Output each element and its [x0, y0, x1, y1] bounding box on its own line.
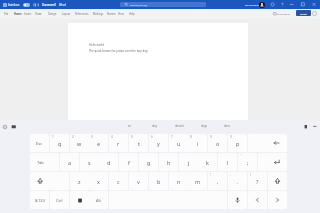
- staticText: o: [216, 140, 220, 147]
- button[interactable]: ;: [238, 153, 257, 171]
- button[interactable]: Share: [296, 10, 311, 16]
- button[interactable]: win: [70, 191, 89, 209]
- staticText: y: [157, 140, 160, 147]
- staticText: Document1: [42, 3, 57, 7]
- button[interactable]: shift: [30, 172, 69, 190]
- button[interactable]: y: [149, 134, 168, 152]
- button[interactable]: References: [74, 9, 88, 19]
- button[interactable]: Comments: [273, 10, 293, 17]
- button[interactable]: left: [248, 191, 267, 209]
- button[interactable]: Search: [120, 2, 206, 7]
- button[interactable]: ,: [208, 172, 227, 190]
- staticText: Tab: [37, 160, 44, 165]
- button[interactable]: r: [109, 134, 128, 152]
- button[interactable]: .: [228, 172, 247, 190]
- button[interactable]: Help: [128, 9, 134, 19]
- button[interactable]: k: [198, 153, 217, 171]
- button[interactable]: Alt: [89, 191, 108, 209]
- button[interactable]: v: [129, 172, 148, 190]
- button[interactable]: p: [228, 134, 247, 152]
- button[interactable]: dogs: [193, 122, 215, 130]
- staticText: Insert: [24, 12, 32, 16]
- staticText: e: [97, 140, 101, 147]
- button[interactable]: c: [109, 172, 128, 190]
- button[interactable]: b: [149, 172, 168, 190]
- button[interactable]: Home: [13, 9, 21, 19]
- staticText: Help: [129, 12, 135, 16]
- staticText: u: [177, 140, 181, 147]
- button[interactable]: More options: [312, 11, 317, 16]
- button[interactable]: q: [50, 134, 69, 152]
- button[interactable]: z: [70, 172, 89, 190]
- button[interactable]: Insert: [23, 9, 31, 19]
- staticText: r: [117, 140, 120, 147]
- button[interactable]: Word: [3, 3, 7, 7]
- button[interactable]: j: [179, 153, 198, 171]
- button[interactable]: g: [139, 153, 158, 171]
- button[interactable]: Layout: [61, 9, 70, 19]
- staticText: Ian Sanders: [245, 3, 259, 6]
- button[interactable]: doesn't: [168, 122, 190, 130]
- button[interactable]: Mailings: [92, 9, 103, 19]
- button[interactable]: enter: [258, 153, 287, 171]
- staticText: f: [128, 159, 130, 166]
- button[interactable]: Design: [47, 9, 56, 19]
- staticText: g: [147, 159, 151, 166]
- button[interactable]: does: [216, 122, 238, 130]
- staticText: .: [237, 178, 239, 185]
- button[interactable]: Ctrl: [50, 191, 69, 209]
- staticText: v: [137, 178, 140, 185]
- button[interactable]: File: [3, 9, 8, 19]
- button[interactable]: f: [119, 153, 138, 171]
- staticText: 1: [52, 135, 54, 139]
- button[interactable]: dog: [143, 122, 165, 130]
- button[interactable]: right: [268, 191, 287, 209]
- other: Window controls: [268, 2, 316, 7]
- button[interactable]: n: [169, 172, 188, 190]
- staticText: ': [240, 154, 241, 158]
- button[interactable]: Emoji: [11, 124, 17, 130]
- button[interactable]: m: [188, 172, 207, 190]
- button[interactable]: d: [99, 153, 118, 171]
- button[interactable]: i: [188, 134, 207, 152]
- button[interactable]: s: [80, 153, 99, 171]
- staticText: ?: [256, 178, 259, 185]
- staticText: Word: [59, 3, 66, 7]
- staticText: &123: [35, 198, 45, 203]
- button[interactable]: mic: [228, 191, 247, 209]
- button[interactable]: w: [70, 134, 89, 152]
- staticText: Review: [107, 12, 116, 16]
- staticText: does: [224, 124, 230, 128]
- staticText: File: [4, 12, 9, 16]
- button[interactable]: Keyboard layout: [303, 124, 309, 130]
- button[interactable]: h: [159, 153, 178, 171]
- button[interactable]: so: [118, 122, 140, 130]
- button[interactable]: Close keyboard: [312, 124, 318, 130]
- button[interactable]: l: [218, 153, 237, 171]
- button[interactable]: e: [89, 134, 108, 152]
- button[interactable]: Keyboard settings: [2, 124, 8, 130]
- staticText: i: [197, 140, 199, 147]
- button[interactable]: u: [169, 134, 188, 152]
- button[interactable]: View: [117, 9, 123, 19]
- staticText: m: [195, 178, 201, 185]
- staticText: n: [177, 178, 181, 185]
- button[interactable]: Draw: [34, 9, 41, 19]
- button[interactable]: ?: [248, 172, 267, 190]
- button[interactable]: t: [129, 134, 148, 152]
- button[interactable]: Tab: [30, 153, 59, 171]
- button[interactable]: a: [60, 153, 79, 171]
- button[interactable]: x: [89, 172, 108, 190]
- button[interactable]: Esc: [30, 134, 49, 152]
- staticText: Mailings: [93, 12, 104, 16]
- staticText: q: [58, 140, 62, 147]
- button[interactable]: shift: [268, 172, 287, 190]
- staticText: Draw: [35, 12, 42, 16]
- button[interactable]: Account: [259, 2, 265, 8]
- button[interactable]: AutoSave toggle: [23, 3, 30, 7]
- button[interactable]: &123: [30, 191, 49, 209]
- button[interactable]: o: [208, 134, 227, 152]
- button[interactable]: Review: [106, 9, 115, 19]
- button[interactable]: backspace: [248, 134, 287, 152]
